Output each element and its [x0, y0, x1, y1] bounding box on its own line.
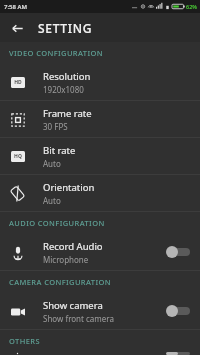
button[interactable]: HD — [0, 64, 200, 100]
button[interactable]: Toggle — [166, 303, 192, 319]
staticText: Frame rate — [43, 107, 92, 120]
staticText: HQ — [14, 153, 22, 160]
staticText: CAMERA CONFIGURATION — [9, 277, 111, 287]
staticText: SETTING — [38, 20, 93, 36]
staticText: Resolution — [43, 70, 91, 83]
staticText: Orientation — [43, 181, 95, 194]
button[interactable]: Show touches — [0, 352, 200, 355]
button[interactable]: Orientation — [0, 175, 200, 211]
staticText: Microphone — [43, 254, 89, 265]
staticText: Record Audio — [43, 240, 103, 253]
button[interactable]: Toggle — [166, 244, 192, 260]
staticText: OTHERS — [9, 336, 40, 346]
button[interactable]: Back — [6, 17, 28, 39]
button[interactable]: Record Audio — [0, 234, 200, 270]
staticText: 1920x1080 — [43, 84, 84, 95]
staticText: Show camera — [43, 299, 103, 312]
staticText: 30 FPS — [43, 121, 68, 132]
staticText: VIDEO CONFIGURATION — [9, 48, 103, 58]
button[interactable]: HQ — [0, 138, 200, 174]
button[interactable]: Toggle — [166, 352, 192, 355]
staticText: Auto — [43, 158, 61, 169]
staticText: 62% — [186, 3, 197, 10]
staticText: Show front camera — [43, 313, 114, 324]
staticText: 7:58 AM — [4, 3, 27, 11]
staticText: HD — [14, 79, 22, 86]
staticText: AUDIO CONFIGURATION — [9, 218, 105, 228]
staticText: Bit rate — [43, 144, 76, 157]
button[interactable]: Frame rate — [0, 101, 200, 137]
staticText: Auto — [43, 195, 61, 206]
button[interactable]: Show camera — [0, 293, 200, 329]
